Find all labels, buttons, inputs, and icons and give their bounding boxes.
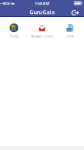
staticText: Message Center [31,35,53,38]
staticText: Portal [10,35,18,38]
staticText: 7:54 AM [34,1,49,6]
button[interactable]: Message Center [28,23,56,39]
button[interactable]: Log out [70,8,82,18]
staticText: AT&T [3,1,12,6]
staticText: Guru Gaia [29,9,54,16]
button[interactable]: Portal [0,23,28,39]
button[interactable]: Forms [56,23,84,39]
staticText: Forms [66,35,73,38]
